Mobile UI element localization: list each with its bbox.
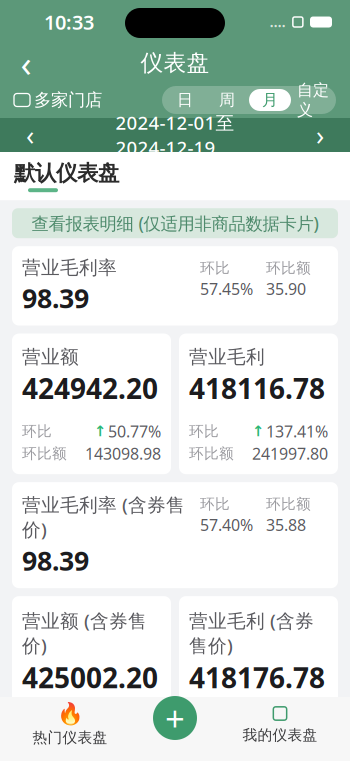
staticText: 营业额 (含券售价) [22,608,147,658]
staticText: 98.39 [22,543,89,578]
staticText: 环比额 [266,495,311,513]
staticText: 57.45% [200,278,253,299]
staticText: 🔥 [56,701,83,726]
staticText: 周 [219,90,235,110]
button[interactable]: Back [6,45,46,81]
staticText: 仪表盘 [140,49,209,77]
staticText: 月 [262,90,278,110]
staticText: ↑ [252,423,264,440]
staticText: 241997.80 [252,443,328,464]
staticText: 查看报表明细 (仅适用非商品数据卡片) [31,212,318,235]
staticText: 多家门店 [34,89,102,111]
button[interactable]: 周 [207,89,247,111]
staticText: 热门仪表盘 [32,729,107,747]
button[interactable]: 自定义 [293,89,333,111]
button[interactable]: 多家门店 [14,89,102,111]
button[interactable]: Add [153,695,197,741]
staticText: 143098.98 [85,443,161,464]
staticText: .... [270,13,286,31]
staticText: 98.39 [22,280,89,315]
staticText: 环比 [22,422,52,440]
staticText: 35.90 [266,278,306,299]
staticText: 35.88 [266,514,306,535]
staticText: ↑ [94,423,106,440]
button[interactable]: 营业额 (含券售价) [12,596,171,761]
staticText: 营业毛利 (含券售价) [189,608,314,658]
staticText: 环比额 [189,734,234,752]
staticText: 137.21% [266,710,328,731]
button[interactable]: 我的仪表盘 [210,704,350,744]
staticText: 营业毛利率 [22,256,117,279]
button[interactable]: 🔥 [0,701,140,747]
staticText: 50.70% [108,710,161,731]
staticText: 环比额 [266,259,311,277]
staticText: 环比 [189,711,219,729]
staticText: 环比额 [189,444,234,462]
staticText: 环比额 [22,444,67,462]
button[interactable]: 营业毛利率 (含券售价) [12,482,338,588]
staticText: 营业毛利率 (含券售价) [22,492,185,542]
button[interactable]: 日 [165,89,205,111]
button[interactable]: Next period [300,120,340,150]
button[interactable]: 营业毛利率 [12,246,338,325]
staticText: 424942.20 [22,369,158,407]
staticText: 自定义 [297,80,329,120]
staticText: 50.77% [108,421,161,442]
staticText: 环比 [200,495,230,513]
staticText: 418116.78 [189,369,325,407]
staticText: 10:33 [44,9,94,35]
staticText: 环比 [200,259,230,277]
staticText: ‹ [20,39,31,87]
button[interactable]: 月 [249,89,291,111]
button[interactable]: 默认仪表盘 [14,160,119,192]
staticText: 425002.20 [22,659,158,696]
staticText: ‹ [26,117,34,153]
staticText: 137.41% [266,421,328,442]
staticText: 环比额 [22,734,67,752]
staticText: 2024-12-01至2024-12-19 [115,110,234,160]
button[interactable]: 查看报表明细 (仅适用非商品数据卡片) [12,208,338,238]
button[interactable]: 营业额 [12,333,171,474]
staticText: 营业额 [22,345,79,368]
staticText: › [316,117,324,153]
staticText: 418176.78 [189,659,325,696]
staticText: 142989.64 [85,732,161,753]
button[interactable]: 营业毛利 (含券售价) [179,596,338,761]
staticText: 241888.46 [252,732,328,753]
staticText: 57.40% [200,514,253,535]
staticText: + [165,695,185,741]
button[interactable]: 营业毛利 [179,333,338,474]
staticText: 营业毛利 [189,345,265,368]
staticText: 环比 [189,422,219,440]
staticText: 我的仪表盘 [242,726,317,744]
staticText: 默认仪表盘 [14,160,119,186]
staticText: ↑ [252,712,264,729]
button[interactable]: Previous period [10,120,50,150]
staticText: 日 [177,90,193,110]
